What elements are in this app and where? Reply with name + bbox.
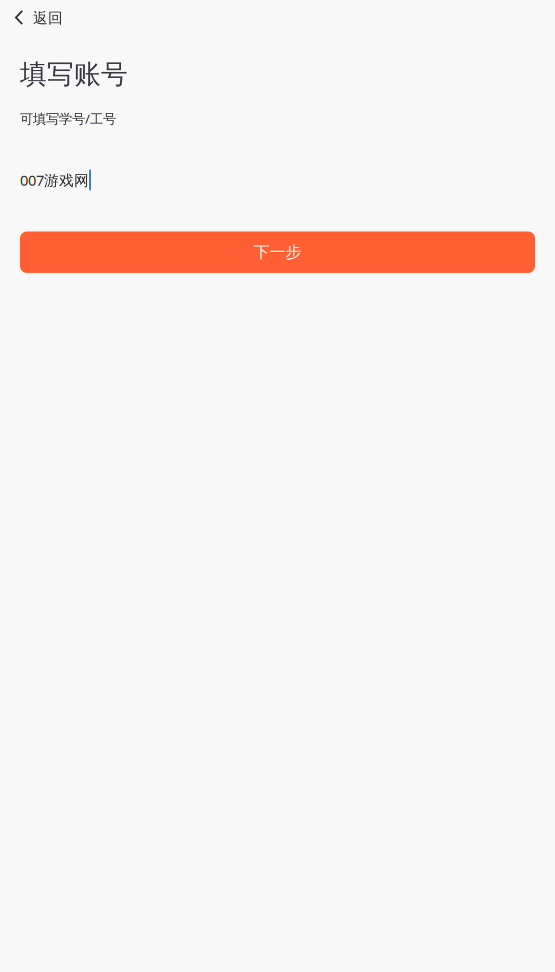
staticText: 填写账号 [20, 58, 128, 91]
button[interactable]: 下一步 [20, 231, 535, 273]
staticText: 可填写学号/工号 [20, 110, 116, 127]
button[interactable]: 返回 [0, 0, 77, 34]
staticText: 下一步 [253, 242, 301, 262]
staticText: 007游戏网 [20, 170, 89, 190]
button[interactable]: 账号输入框 [0, 169, 555, 190]
staticText: 返回 [33, 9, 63, 27]
